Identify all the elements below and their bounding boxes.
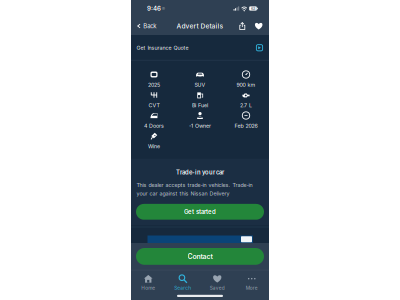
staticText: 9:46 [147,5,161,12]
staticText: ⌾ [161,6,165,11]
staticText: Contact [187,252,212,261]
button[interactable]: Get started [136,204,264,220]
staticText: 2.7 L [240,102,252,108]
staticText: Back [143,22,156,30]
staticText: your car against this Nissan Delivery [136,190,229,197]
staticText: More [246,285,258,291]
staticText: Feb 2026 [234,122,257,129]
button[interactable]: Get Insurance Quote [131,35,269,60]
staticText: Wine [148,143,160,149]
staticText: 2025 [148,81,160,88]
button[interactable]: Contact [136,248,264,265]
staticText: 4 Doors [144,122,164,129]
button[interactable]: Saved [200,272,234,293]
staticText: Advert Details [176,22,223,30]
staticText: Bi Fuel [192,102,208,108]
button[interactable]: Back [131,17,161,35]
button[interactable]: Search [165,272,200,293]
button[interactable]: Share [234,17,250,35]
staticText: This dealer accepts trade-in vehicles. T… [136,182,252,188]
staticText: Home [141,285,155,291]
button[interactable]: Save advert [250,17,269,35]
staticText: 900 km [236,81,255,88]
button[interactable]: Home [131,272,165,293]
staticText: Trade-in your car [176,169,224,176]
button[interactable]: More [234,272,269,293]
staticText: Search [174,285,191,291]
staticText: Get Insurance Quote [136,44,188,51]
staticText: Saved [210,285,225,291]
staticText: 63 [251,6,255,11]
staticText: SUV [194,81,205,88]
staticText: Get started [184,208,216,215]
staticText: CVT [148,102,159,108]
staticText: -1 Owner [189,122,211,129]
